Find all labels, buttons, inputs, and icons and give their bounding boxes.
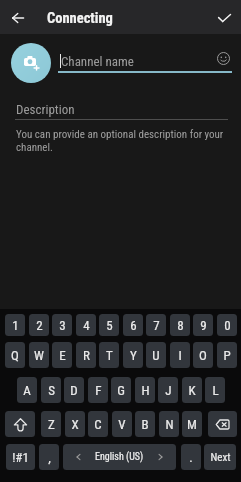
staticText: V xyxy=(118,417,126,432)
staticText: C xyxy=(94,417,102,432)
button[interactable]: N xyxy=(159,411,179,437)
button[interactable]: X xyxy=(65,411,85,437)
staticText: 6 xyxy=(130,318,137,333)
staticText: 3 xyxy=(59,318,66,333)
button[interactable]: Back xyxy=(6,6,30,30)
staticText: 9 xyxy=(200,318,207,333)
staticText: Connecting xyxy=(47,10,113,27)
staticText: Description xyxy=(16,102,75,117)
button[interactable]: 1 xyxy=(5,314,25,336)
button[interactable]: 3 xyxy=(52,314,72,336)
staticText: 1 xyxy=(12,318,19,333)
button[interactable]: 7 xyxy=(146,314,166,336)
staticText: F xyxy=(95,383,102,398)
staticText: Next xyxy=(210,451,231,464)
staticText: L xyxy=(212,383,219,398)
button[interactable]: B xyxy=(135,411,155,437)
button[interactable]: P xyxy=(217,342,237,368)
staticText: You can provide an optional description … xyxy=(16,128,228,154)
button[interactable]: 8 xyxy=(170,314,190,336)
button[interactable]: I xyxy=(170,342,190,368)
button[interactable]: M xyxy=(182,411,202,437)
button[interactable]: Backspace xyxy=(208,411,237,437)
button[interactable]: W xyxy=(29,342,49,368)
button[interactable]: R xyxy=(76,342,96,368)
staticText: X xyxy=(71,417,79,432)
button[interactable]: , xyxy=(39,444,59,470)
staticText: R xyxy=(83,348,90,363)
staticText: O xyxy=(199,348,207,363)
button[interactable]: Add channel photo xyxy=(11,43,51,83)
staticText: D xyxy=(70,383,78,398)
button[interactable]: Space xyxy=(63,444,176,470)
staticText: H xyxy=(141,383,150,398)
staticText: . xyxy=(189,450,193,465)
button[interactable]: O xyxy=(193,342,213,368)
button[interactable]: 4 xyxy=(76,314,96,336)
staticText: P xyxy=(223,348,231,363)
button[interactable]: F xyxy=(88,377,108,403)
staticText: !#1 xyxy=(12,450,29,465)
staticText: G xyxy=(117,383,125,398)
staticText: Q xyxy=(11,348,19,363)
button[interactable]: 5 xyxy=(99,314,119,336)
staticText: M xyxy=(187,417,197,432)
staticText: J xyxy=(165,383,172,398)
button[interactable]: 0 xyxy=(217,314,237,336)
staticText: Z xyxy=(48,417,55,432)
staticText: 5 xyxy=(106,318,113,333)
staticText: K xyxy=(188,383,196,398)
staticText: U xyxy=(152,348,160,363)
staticText: E xyxy=(59,348,66,363)
button[interactable]: E xyxy=(52,342,72,368)
staticText: 4 xyxy=(83,318,90,333)
button[interactable]: H xyxy=(135,377,155,403)
staticText: A xyxy=(23,383,31,398)
button[interactable]: 2 xyxy=(29,314,49,336)
staticText: W xyxy=(34,348,44,363)
button[interactable]: Q xyxy=(5,342,25,368)
button[interactable]: L xyxy=(205,377,225,403)
button[interactable]: D xyxy=(64,377,84,403)
staticText: 0 xyxy=(224,318,231,333)
button[interactable]: 9 xyxy=(193,314,213,336)
staticText: , xyxy=(48,450,51,465)
button[interactable]: G xyxy=(111,377,131,403)
button[interactable]: Done xyxy=(212,6,236,30)
button[interactable]: K xyxy=(182,377,202,403)
staticText: I xyxy=(178,348,182,363)
button[interactable]: V xyxy=(112,411,132,437)
staticText: Channel name xyxy=(61,54,134,69)
button[interactable]: Shift xyxy=(5,411,35,437)
staticText: 2 xyxy=(36,318,43,333)
button[interactable]: 6 xyxy=(123,314,143,336)
button[interactable]: J xyxy=(158,377,178,403)
staticText: T xyxy=(106,348,113,363)
staticText: English (US) xyxy=(95,451,144,463)
button[interactable]: Emoji xyxy=(213,48,233,68)
button[interactable]: Next xyxy=(204,444,236,470)
staticText: Y xyxy=(130,348,137,363)
staticText: B xyxy=(141,417,149,432)
staticText: 8 xyxy=(177,318,184,333)
button[interactable]: A xyxy=(17,377,37,403)
button[interactable]: Z xyxy=(41,411,61,437)
button[interactable]: Y xyxy=(123,342,143,368)
button[interactable]: U xyxy=(146,342,166,368)
button[interactable]: C xyxy=(88,411,108,437)
button[interactable]: . xyxy=(181,444,201,470)
button[interactable]: !#1 xyxy=(6,444,35,470)
staticText: N xyxy=(165,417,174,432)
button[interactable]: S xyxy=(41,377,61,403)
button[interactable]: T xyxy=(99,342,119,368)
staticText: S xyxy=(48,383,55,398)
staticText: 7 xyxy=(153,318,160,333)
